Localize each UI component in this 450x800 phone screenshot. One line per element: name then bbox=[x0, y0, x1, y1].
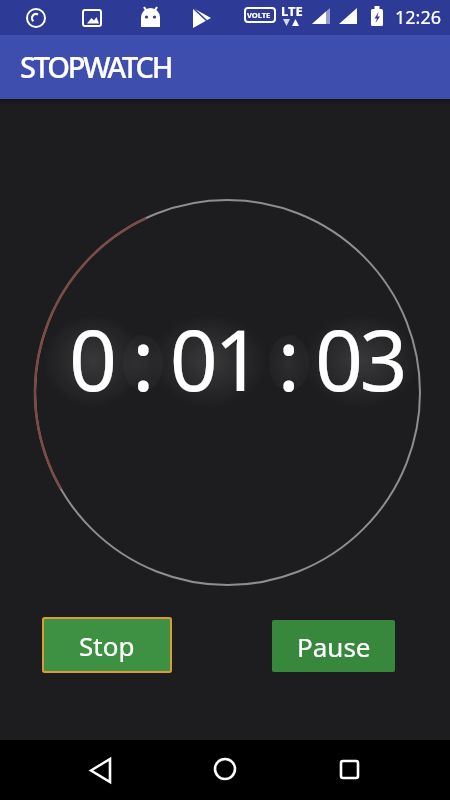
staticText: STOPWATCH bbox=[20, 47, 172, 86]
button[interactable]: Stop bbox=[42, 617, 172, 673]
button[interactable] bbox=[320, 750, 380, 794]
staticText: 12:26 bbox=[395, 5, 442, 30]
staticText: VOLTE bbox=[247, 10, 271, 20]
button[interactable] bbox=[70, 750, 130, 794]
button[interactable]: Pause bbox=[272, 620, 395, 672]
staticText: 0 : 01 : 03 bbox=[69, 301, 405, 415]
button[interactable]: STOPWATCH bbox=[0, 35, 450, 99]
staticText: LTE bbox=[281, 2, 303, 20]
staticText: Pause bbox=[297, 629, 371, 664]
staticText: Stop bbox=[79, 628, 135, 663]
button[interactable] bbox=[195, 750, 255, 794]
